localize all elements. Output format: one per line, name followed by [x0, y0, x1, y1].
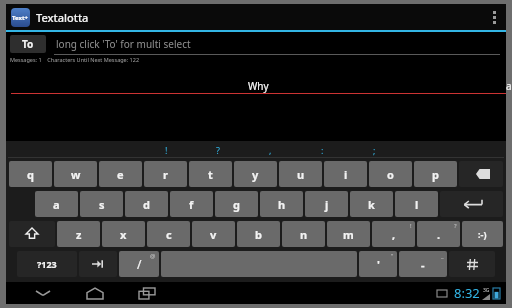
staticText: p: [432, 167, 439, 182]
staticText: _: [441, 252, 444, 260]
button[interactable]: i: [324, 161, 367, 187]
button[interactable]: [440, 191, 503, 217]
button[interactable]: s: [80, 191, 123, 217]
button[interactable]: .: [417, 221, 460, 247]
staticText: h: [278, 197, 286, 212]
button[interactable]: :-): [462, 221, 503, 247]
button[interactable]: [449, 251, 495, 277]
button[interactable]: r: [144, 161, 187, 187]
button[interactable]: More options: [487, 4, 501, 30]
button[interactable]: To: [10, 35, 46, 53]
button[interactable]: Hide keyboard: [26, 282, 60, 304]
button[interactable]: q: [9, 161, 52, 187]
staticText: j: [325, 197, 329, 212]
button[interactable]: ?: [192, 143, 244, 157]
staticText: ': [377, 257, 380, 272]
button[interactable]: ,: [244, 143, 296, 157]
staticText: ?123: [37, 258, 57, 270]
button[interactable]: ': [359, 251, 397, 277]
button[interactable]: App icon: [11, 8, 30, 27]
staticText: o: [387, 167, 394, 182]
staticText: y: [252, 167, 259, 182]
staticText: t: [208, 167, 213, 182]
button[interactable]: g: [215, 191, 258, 217]
button[interactable]: b: [237, 221, 280, 247]
staticText: l: [415, 197, 419, 212]
button[interactable]: z: [57, 221, 100, 247]
staticText: u: [297, 167, 305, 182]
staticText: :-): [478, 228, 487, 240]
button[interactable]: n: [282, 221, 325, 247]
staticText: i: [344, 167, 348, 182]
button[interactable]: [79, 251, 117, 277]
button[interactable]: ;: [348, 143, 400, 157]
staticText: v: [210, 227, 217, 242]
staticText: r: [163, 167, 168, 182]
staticText: 3G: [483, 287, 490, 294]
button[interactable]: ,: [372, 221, 415, 247]
staticText: long click 'To' for multi select: [56, 37, 191, 51]
staticText: Text+: [12, 14, 29, 22]
staticText: b: [255, 227, 262, 242]
button[interactable]: m: [327, 221, 370, 247]
button[interactable]: y: [234, 161, 277, 187]
staticText: Textalotta: [36, 10, 89, 25]
staticText: ;: [373, 144, 376, 156]
staticText: k: [368, 197, 375, 212]
button[interactable]: ?123: [17, 251, 77, 277]
staticText: w: [71, 167, 81, 182]
button[interactable]: [459, 161, 503, 187]
button[interactable]: Home: [78, 282, 112, 304]
staticText: ?: [216, 144, 220, 156]
staticText: c: [166, 227, 172, 242]
staticText: ": [391, 252, 394, 260]
button[interactable]: c: [147, 221, 190, 247]
button[interactable]: p: [414, 161, 457, 187]
button[interactable]: d: [125, 191, 168, 217]
button[interactable]: k: [350, 191, 393, 217]
staticText: s: [99, 197, 105, 212]
staticText: @: [150, 252, 156, 260]
staticText: Messages: 1 Characters Until Next Messag…: [10, 56, 140, 63]
button[interactable]: x: [102, 221, 145, 247]
button[interactable]: !: [140, 143, 192, 157]
button[interactable]: Recent apps: [130, 282, 164, 304]
button[interactable]: j: [305, 191, 348, 217]
button[interactable]: w: [54, 161, 97, 187]
button[interactable]: v: [192, 221, 235, 247]
button[interactable]: u: [279, 161, 322, 187]
staticText: To: [22, 37, 34, 51]
button[interactable]: h: [260, 191, 303, 217]
staticText: Why: [248, 79, 269, 93]
staticText: !: [165, 144, 168, 156]
staticText: ?: [454, 222, 457, 230]
staticText: :: [321, 144, 324, 156]
staticText: !: [410, 222, 412, 230]
staticText: d: [143, 197, 150, 212]
button[interactable]: l: [395, 191, 438, 217]
button[interactable]: a: [35, 191, 78, 217]
button[interactable]: -: [399, 251, 447, 277]
button[interactable]: long click 'To' for multi select: [54, 32, 500, 55]
staticText: g: [233, 197, 240, 212]
button[interactable]: /: [119, 251, 159, 277]
staticText: .: [437, 227, 441, 242]
staticText: 8:32: [454, 284, 480, 302]
staticText: q: [27, 167, 34, 182]
button[interactable]: e: [99, 161, 142, 187]
staticText: x: [120, 227, 127, 242]
button[interactable]: t: [189, 161, 232, 187]
button[interactable]: f: [170, 191, 213, 217]
staticText: -: [421, 257, 425, 272]
button[interactable]: o: [369, 161, 412, 187]
staticText: a: [53, 197, 60, 212]
staticText: ,: [392, 227, 396, 242]
staticText: /: [137, 256, 142, 272]
staticText: z: [76, 227, 82, 242]
button[interactable]: [9, 221, 55, 247]
button[interactable]: :: [296, 143, 348, 157]
staticText: e: [117, 167, 124, 182]
staticText: n: [300, 227, 308, 242]
staticText: m: [343, 227, 354, 242]
